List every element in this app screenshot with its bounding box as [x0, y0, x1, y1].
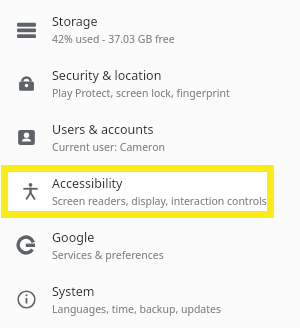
- button[interactable]: Storage: [0, 2, 300, 56]
- staticText: System: [52, 283, 95, 300]
- staticText: Google: [52, 229, 95, 246]
- staticText: 42% used - 37.03 GB free: [52, 32, 175, 46]
- button[interactable]: System: [0, 272, 300, 326]
- staticText: Current user: Cameron: [52, 140, 166, 154]
- staticText: Storage: [52, 13, 98, 30]
- staticText: Languages, time, backup, updates: [52, 302, 221, 316]
- staticText: Play Protect, screen lock, fingerprint: [52, 86, 230, 100]
- staticText: Users & accounts: [52, 121, 154, 138]
- staticText: Services & preferences: [52, 248, 164, 262]
- staticText: Security & location: [52, 67, 162, 84]
- button[interactable]: Users & accounts: [0, 110, 300, 164]
- button[interactable]: Security & location: [0, 56, 300, 110]
- button[interactable]: Google: [0, 218, 300, 272]
- staticText: Screen readers, display, interaction con…: [52, 194, 267, 208]
- button[interactable]: Accessibility: [8, 172, 267, 211]
- staticText: Accessibility: [52, 175, 123, 192]
